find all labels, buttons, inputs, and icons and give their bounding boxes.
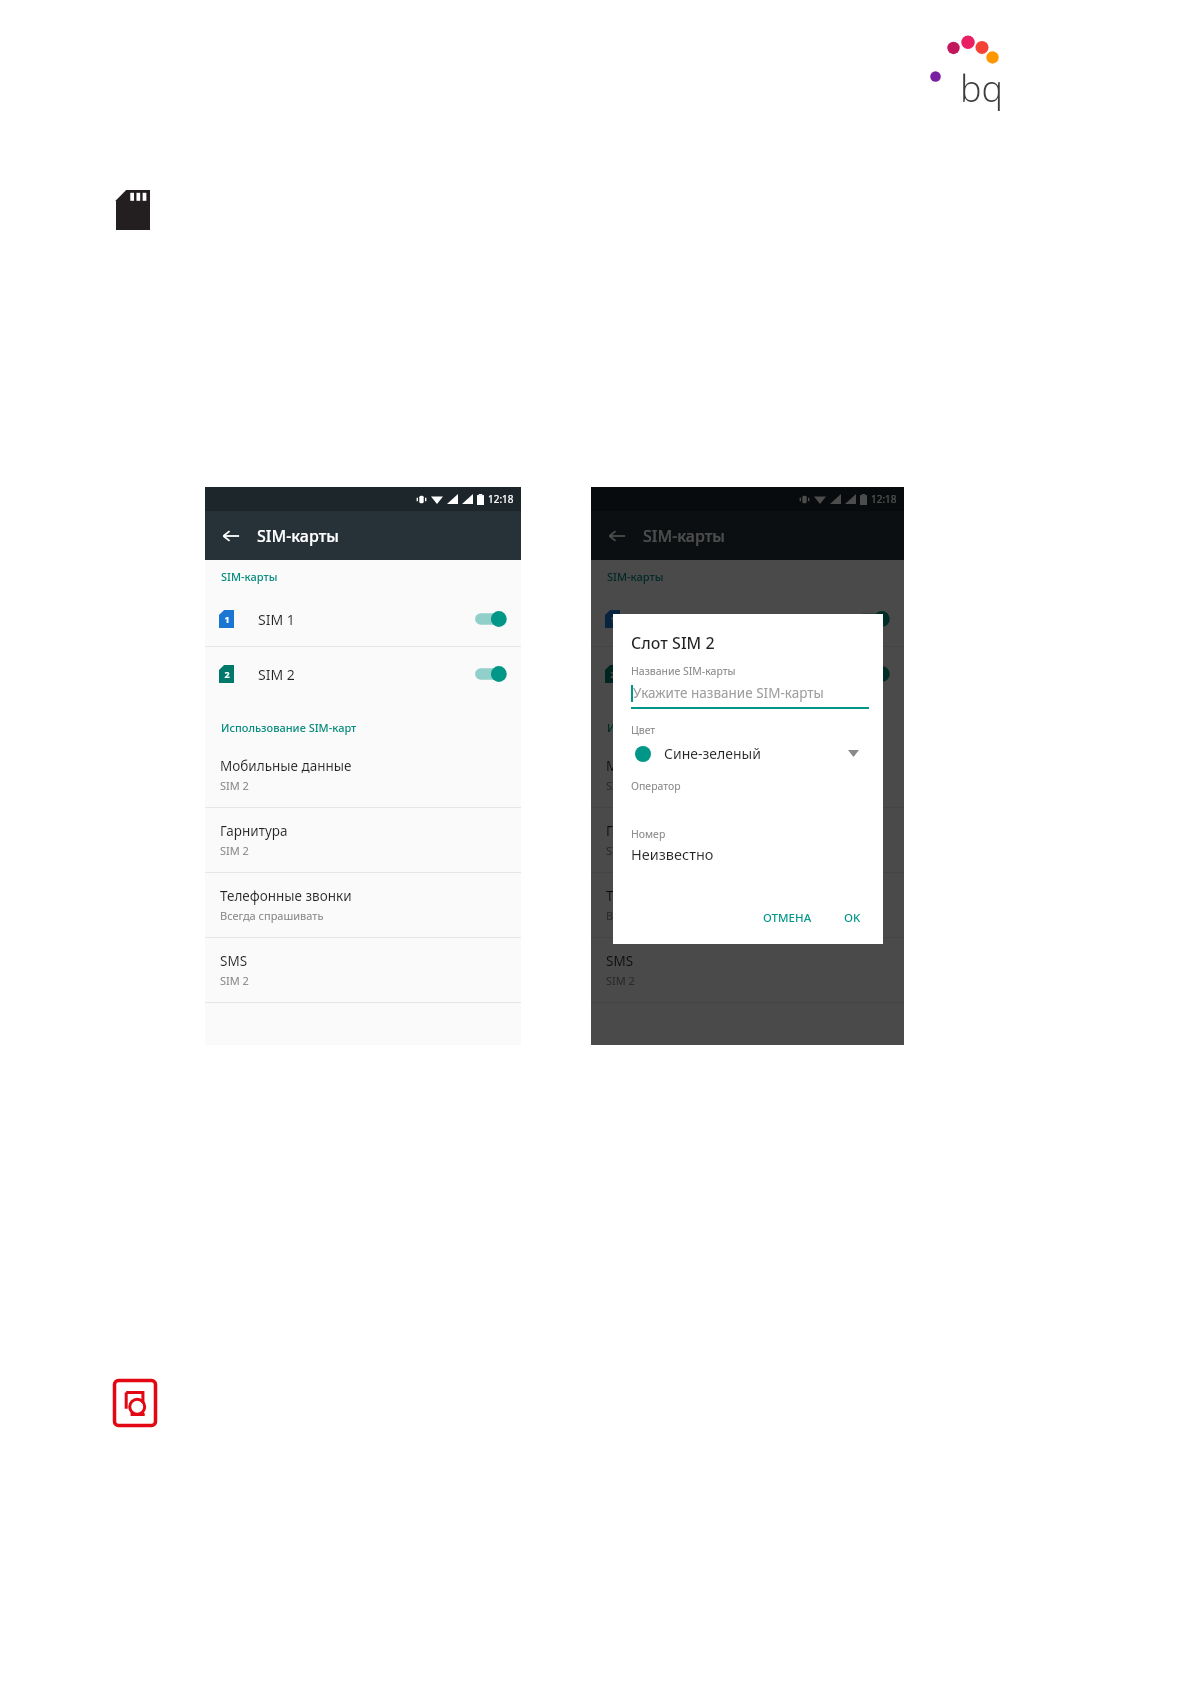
staticText: Телефонные звонки bbox=[606, 887, 738, 905]
button[interactable]: Toggle SIM bbox=[473, 608, 507, 630]
staticText: SMS bbox=[220, 952, 248, 970]
button[interactable]: Сине-зеленый bbox=[631, 744, 869, 763]
staticText: OK bbox=[844, 910, 861, 926]
button[interactable]: Back bbox=[213, 518, 249, 554]
staticText: bq bbox=[960, 64, 1004, 113]
button[interactable]: Мобильные данные bbox=[591, 743, 904, 807]
button[interactable]: Toggle SIM bbox=[856, 608, 890, 630]
staticText: Телефонные звонки bbox=[220, 887, 352, 905]
staticText: Неизвестно bbox=[631, 844, 714, 864]
button[interactable]: SMS bbox=[591, 938, 904, 1002]
staticText: 1 bbox=[610, 613, 616, 625]
staticText: ОТМЕНА bbox=[763, 910, 812, 926]
staticText: Название SIM-карты bbox=[631, 664, 736, 678]
staticText: SIM-карты bbox=[643, 525, 725, 547]
button[interactable]: 1 bbox=[205, 592, 521, 646]
staticText: SIM 2 bbox=[258, 665, 295, 684]
button[interactable]: Toggle SIM bbox=[856, 663, 890, 685]
button[interactable]: Телефонные звонки bbox=[205, 873, 521, 937]
staticText: 12:18 bbox=[871, 492, 897, 506]
staticText: SIM 2 bbox=[606, 778, 635, 793]
staticText: Слот SIM 2 bbox=[631, 632, 715, 654]
staticText: SIM 1 bbox=[644, 610, 681, 629]
staticText: Мобильные данные bbox=[606, 757, 738, 775]
staticText: 2 bbox=[610, 668, 616, 680]
button[interactable]: Мобильные данные bbox=[205, 743, 521, 807]
staticText: Гарнитура bbox=[220, 822, 288, 840]
staticText: SIM 2 bbox=[220, 778, 249, 793]
button[interactable]: Укажите название SIM-карты bbox=[631, 684, 869, 709]
staticText: Укажите название SIM-карты bbox=[633, 684, 824, 702]
staticText: Оператор bbox=[631, 779, 681, 793]
button[interactable]: Телефонные звонки bbox=[591, 873, 904, 937]
staticText: Использование SIM-карт bbox=[221, 720, 357, 735]
button[interactable]: 1 bbox=[591, 592, 904, 646]
staticText: 2 bbox=[224, 668, 230, 680]
staticText: SIM-карты bbox=[257, 525, 339, 547]
button[interactable]: ОТМЕНА bbox=[755, 904, 820, 932]
staticText: Всегда спрашивать bbox=[220, 908, 324, 923]
staticText: Сине-зеленый bbox=[664, 744, 761, 763]
staticText: SIM 1 bbox=[258, 610, 295, 629]
staticText: Использование SIM-карт bbox=[607, 720, 743, 735]
staticText: Всегда спрашивать bbox=[606, 908, 710, 923]
staticText: SIM 2 bbox=[644, 665, 681, 684]
button[interactable]: Back bbox=[599, 518, 635, 554]
staticText: SIM-карты bbox=[221, 569, 278, 584]
staticText: 12:18 bbox=[488, 492, 514, 506]
button[interactable]: Гарнитура bbox=[591, 808, 904, 872]
staticText: SIM 2 bbox=[220, 973, 249, 988]
staticText: SIM 2 bbox=[606, 843, 635, 858]
staticText: Цвет bbox=[631, 723, 656, 737]
staticText: 1 bbox=[224, 613, 230, 625]
staticText: SMS bbox=[606, 952, 634, 970]
button[interactable]: Гарнитура bbox=[205, 808, 521, 872]
staticText: SIM 2 bbox=[220, 843, 249, 858]
staticText: Гарнитура bbox=[606, 822, 674, 840]
button[interactable]: Toggle SIM bbox=[473, 663, 507, 685]
button[interactable]: OK bbox=[836, 904, 869, 932]
staticText: Мобильные данные bbox=[220, 757, 352, 775]
staticText: Номер bbox=[631, 827, 666, 841]
button[interactable]: 2 bbox=[205, 647, 521, 701]
button[interactable]: SMS bbox=[205, 938, 521, 1002]
button[interactable]: 2 bbox=[591, 647, 904, 701]
staticText: SIM 2 bbox=[606, 973, 635, 988]
staticText: SIM-карты bbox=[607, 569, 664, 584]
